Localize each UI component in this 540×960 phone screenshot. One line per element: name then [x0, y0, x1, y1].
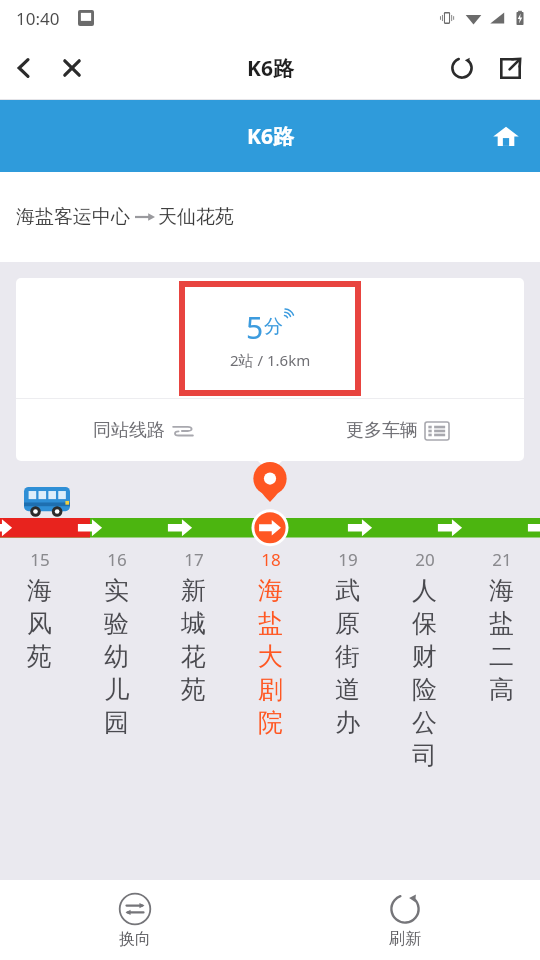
staticText: 苑: [27, 641, 52, 672]
staticText: 更多车辆: [346, 419, 418, 442]
staticText: 15: [30, 548, 50, 571]
staticText: 海: [489, 575, 514, 606]
staticText: 盐: [489, 608, 514, 639]
staticText: 高: [489, 674, 514, 705]
button[interactable]: 更多车辆: [270, 399, 524, 461]
staticText: 道: [335, 674, 360, 705]
staticText: 办: [335, 707, 360, 738]
staticText: 二: [489, 641, 514, 672]
staticText: 19: [338, 548, 358, 571]
staticText: 18: [261, 548, 281, 571]
staticText: 海盐客运中心: [16, 205, 130, 229]
button[interactable]: 15: [0, 548, 78, 880]
staticText: 换向: [119, 929, 151, 949]
staticText: 5: [246, 307, 264, 348]
staticText: 16: [107, 548, 127, 571]
staticText: 武: [335, 575, 360, 606]
staticText: 2站 / 1.6km: [230, 350, 311, 370]
button[interactable]: 18: [232, 548, 309, 880]
staticText: 人: [412, 575, 437, 606]
staticText: 17: [184, 548, 204, 571]
staticText: 园: [104, 707, 129, 738]
button[interactable]: Close: [48, 44, 96, 92]
staticText: 实: [104, 575, 129, 606]
staticText: 盐: [258, 608, 283, 639]
button[interactable]: 19: [309, 548, 386, 880]
staticText: 新: [181, 575, 206, 606]
staticText: 保: [412, 608, 437, 639]
button[interactable]: 同站线路: [16, 399, 270, 461]
staticText: 20: [415, 548, 435, 571]
button[interactable]: Back: [0, 44, 48, 92]
staticText: K6路: [247, 122, 294, 151]
staticText: 花: [181, 641, 206, 672]
staticText: 10:40: [16, 7, 60, 30]
button[interactable]: 20: [386, 548, 463, 880]
staticText: 财: [412, 641, 437, 672]
staticText: 分: [264, 315, 283, 339]
button[interactable]: 16: [78, 548, 155, 880]
button[interactable]: 刷新: [270, 880, 540, 960]
staticText: 苑: [181, 674, 206, 705]
button[interactable]: Share: [486, 44, 534, 92]
button[interactable]: 21: [463, 548, 540, 880]
button[interactable]: Refresh: [438, 44, 486, 92]
staticText: 海: [27, 575, 52, 606]
staticText: 21: [492, 548, 512, 571]
staticText: 幼: [104, 641, 129, 672]
staticText: 原: [335, 608, 360, 639]
staticText: 险: [412, 674, 437, 705]
staticText: 同站线路: [93, 419, 165, 442]
staticText: K6路: [247, 54, 294, 83]
staticText: 儿: [104, 674, 129, 705]
staticText: 风: [27, 608, 52, 639]
staticText: 验: [104, 608, 129, 639]
staticText: 天仙花苑: [158, 205, 234, 229]
staticText: 海: [258, 575, 283, 606]
button[interactable]: Home: [484, 114, 528, 158]
staticText: 刷新: [389, 929, 421, 949]
staticText: 司: [412, 740, 437, 771]
staticText: 城: [181, 608, 206, 639]
button[interactable]: 17: [155, 548, 232, 880]
staticText: 院: [258, 707, 283, 738]
staticText: 街: [335, 641, 360, 672]
button[interactable]: 5: [185, 287, 355, 390]
button[interactable]: 换向: [0, 880, 270, 960]
staticText: 剧: [258, 674, 283, 705]
staticText: 大: [258, 641, 283, 672]
staticText: 公: [412, 707, 437, 738]
